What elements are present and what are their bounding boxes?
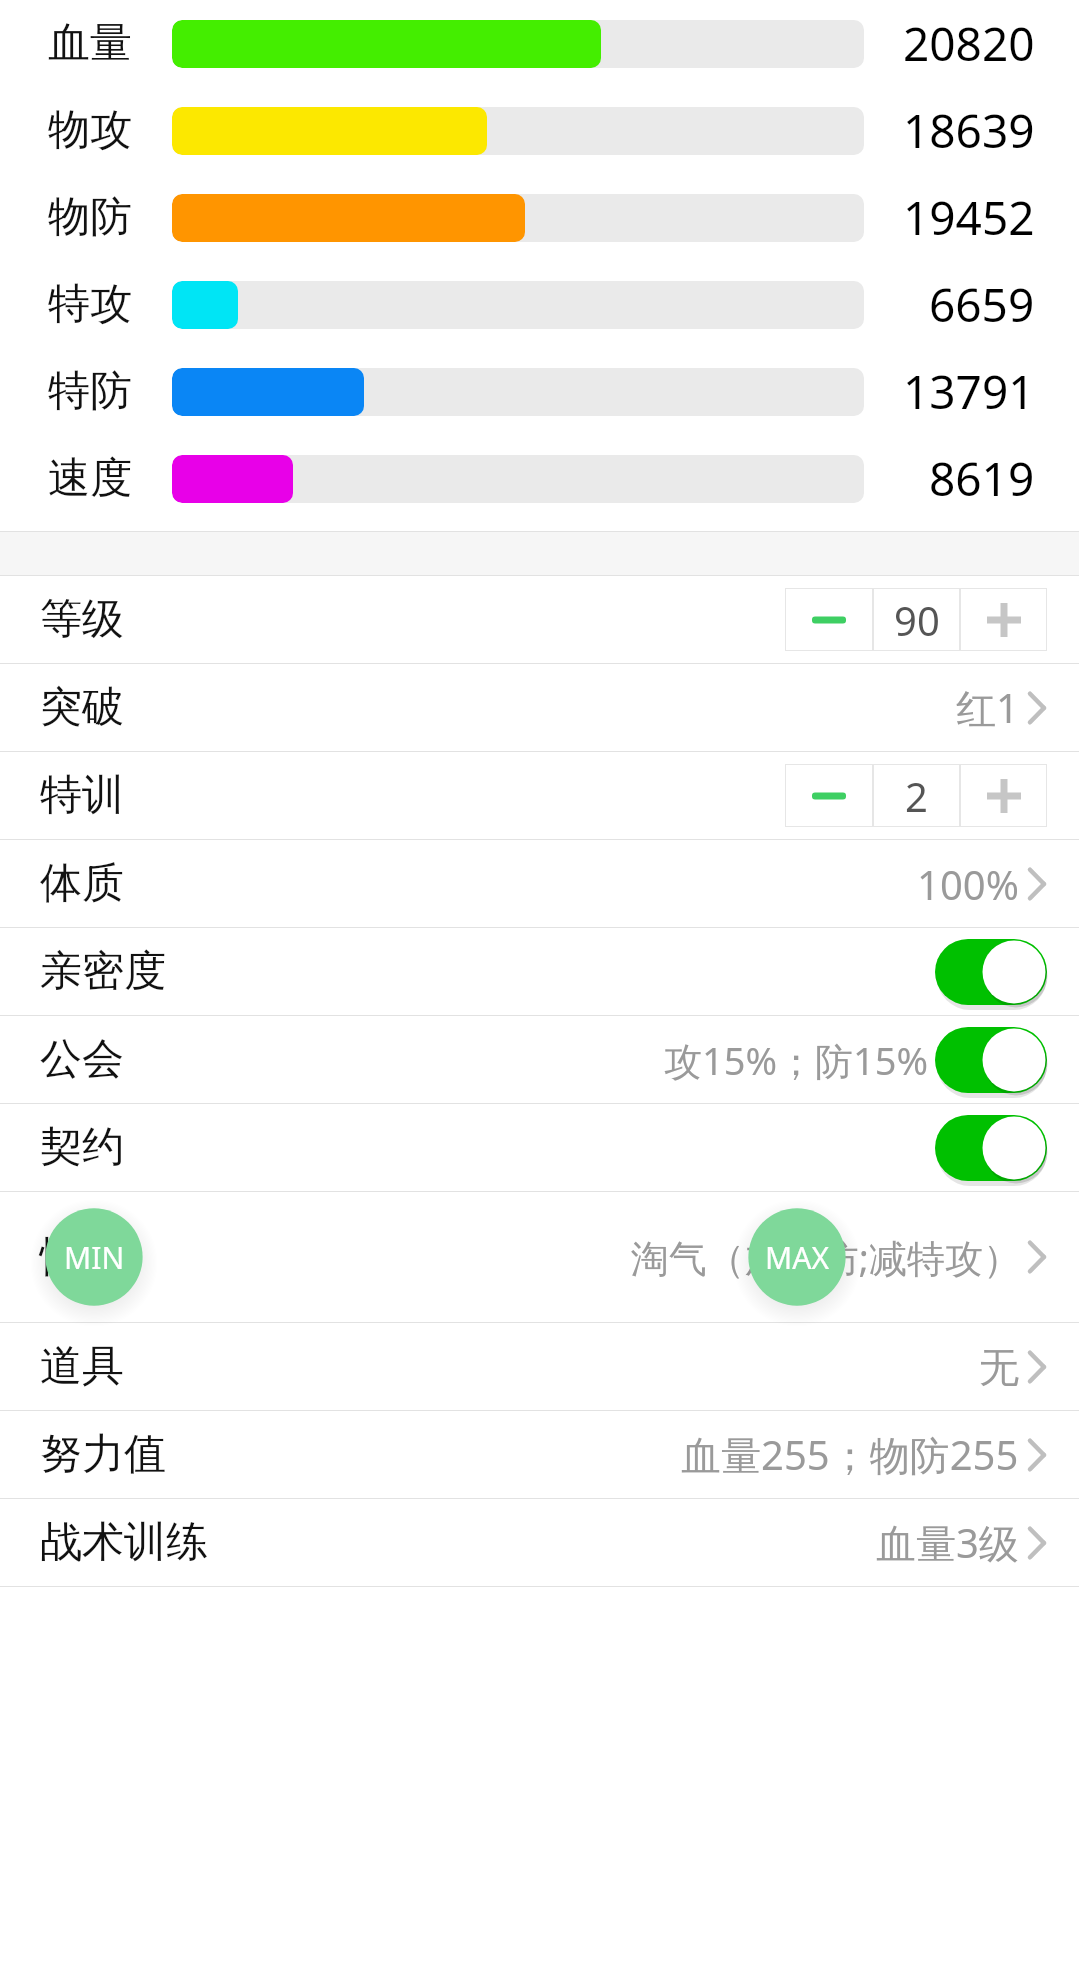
staticText: 特攻 (48, 278, 132, 331)
staticText: 物防 (48, 191, 132, 244)
staticText: 突破 (40, 681, 124, 734)
button[interactable]: 公会 (0, 1016, 1079, 1104)
staticText: 血量3级 (876, 1515, 1019, 1570)
staticText: 战术训练 (40, 1516, 208, 1569)
staticText: 体质 (40, 857, 124, 910)
staticText: 无 (979, 1342, 1019, 1392)
staticText: 攻15%；防15% (664, 1034, 929, 1086)
staticText: 红1 (956, 680, 1019, 735)
button[interactable]: 契约 (0, 1104, 1079, 1192)
staticText: MAX (765, 1237, 829, 1278)
staticText: 契约 (40, 1121, 124, 1174)
button[interactable]: 努力值 (0, 1411, 1079, 1499)
button[interactable]: Decrease (785, 764, 873, 827)
staticText: 13791 (903, 360, 1035, 423)
staticText: MIN (64, 1237, 125, 1278)
staticText: 19452 (903, 186, 1035, 249)
button[interactable]: Toggle (935, 1115, 1047, 1181)
staticText: 特训 (40, 769, 124, 822)
staticText: 性格 (40, 1231, 124, 1284)
button[interactable]: 性格 (0, 1192, 1079, 1323)
button[interactable]: Toggle (935, 939, 1047, 1005)
button[interactable]: 特训 (0, 752, 1079, 840)
staticText: 公会 (40, 1033, 124, 1086)
staticText: 90 (894, 593, 940, 647)
staticText: 8619 (929, 447, 1035, 510)
staticText: 亲密度 (40, 945, 166, 998)
staticText: 速度 (48, 452, 132, 505)
button[interactable]: Decrease (785, 588, 873, 651)
button[interactable]: 战术训练 (0, 1499, 1079, 1587)
button[interactable]: 等级 (0, 576, 1079, 664)
staticText: 淘气（加物防;减特攻） (627, 1231, 1021, 1283)
staticText: 努力值 (40, 1428, 166, 1481)
staticText: 2 (905, 769, 928, 823)
button[interactable]: 道具 (0, 1323, 1079, 1411)
staticText: 18639 (903, 99, 1035, 162)
staticText: 特防 (48, 365, 132, 418)
button[interactable]: 亲密度 (0, 928, 1079, 1016)
button[interactable]: Increase (960, 764, 1047, 827)
staticText: 物攻 (48, 104, 132, 157)
staticText: 等级 (40, 593, 124, 646)
staticText: 20820 (903, 12, 1035, 75)
staticText: 道具 (40, 1340, 124, 1393)
button[interactable]: Increase (960, 588, 1047, 651)
button[interactable]: 突破 (0, 664, 1079, 752)
button[interactable]: 体质 (0, 840, 1079, 928)
staticText: 血量 (48, 17, 132, 70)
staticText: 6659 (929, 273, 1035, 336)
staticText: 100% (917, 857, 1019, 911)
staticText: 血量255；物防255 (681, 1427, 1019, 1482)
button[interactable]: Toggle (935, 1027, 1047, 1093)
